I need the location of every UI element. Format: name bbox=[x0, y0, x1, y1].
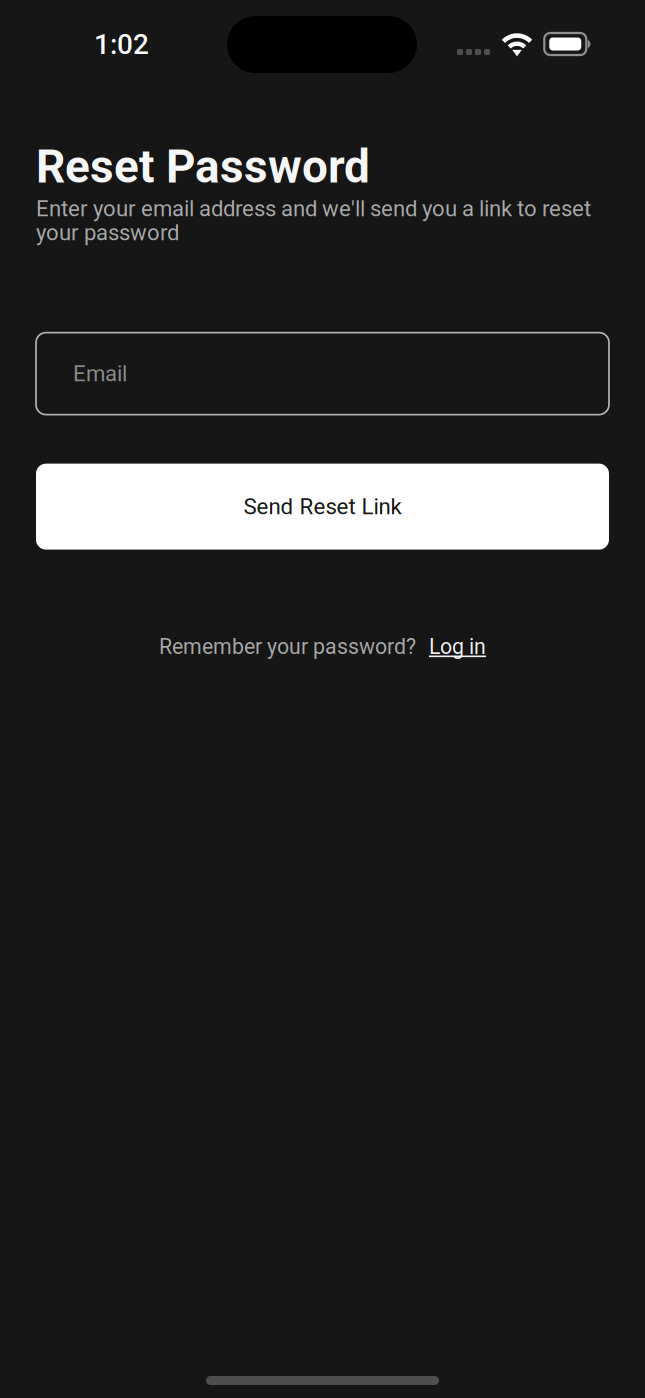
staticText: 1:02 bbox=[94, 28, 149, 61]
staticText: Email bbox=[73, 361, 127, 387]
button[interactable]: Send Reset Link bbox=[36, 464, 609, 550]
staticText: Remember your password? bbox=[159, 634, 416, 659]
staticText: Reset Password bbox=[36, 140, 370, 194]
staticText: Send Reset Link bbox=[243, 494, 401, 520]
staticText: Log in bbox=[429, 634, 486, 659]
button[interactable]: Email bbox=[36, 333, 609, 415]
staticText: Enter your email address and we'll send … bbox=[36, 196, 591, 246]
button[interactable]: Remember your password? bbox=[36, 627, 609, 667]
